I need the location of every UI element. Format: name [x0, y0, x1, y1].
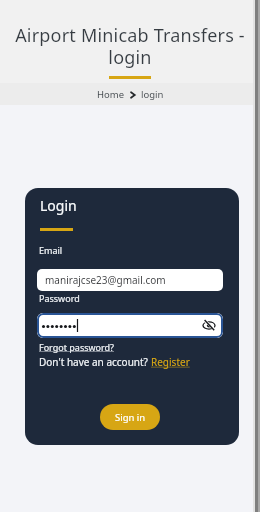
staticText: Password [39, 292, 80, 304]
staticText: Email [39, 244, 63, 256]
staticText: Don't have an account? [39, 355, 151, 369]
button[interactable]: Forgot password? [39, 341, 115, 353]
staticText: Forgot password? [39, 341, 115, 353]
staticText: Login [40, 196, 77, 215]
staticText: Airport Minicab Transfers - login [15, 23, 245, 70]
staticText: Register [151, 355, 190, 369]
staticText: login [141, 88, 164, 101]
staticText: Home [97, 88, 125, 101]
staticText: Sign in [115, 411, 146, 424]
button[interactable]: Sign in [100, 404, 160, 430]
staticText: manirajcse23@gmail.com [45, 273, 166, 287]
button[interactable]: manirajcse23@gmail.com [37, 269, 223, 291]
button[interactable] [37, 313, 223, 338]
button[interactable]: Home [97, 88, 125, 101]
button[interactable]: Register [151, 355, 190, 369]
